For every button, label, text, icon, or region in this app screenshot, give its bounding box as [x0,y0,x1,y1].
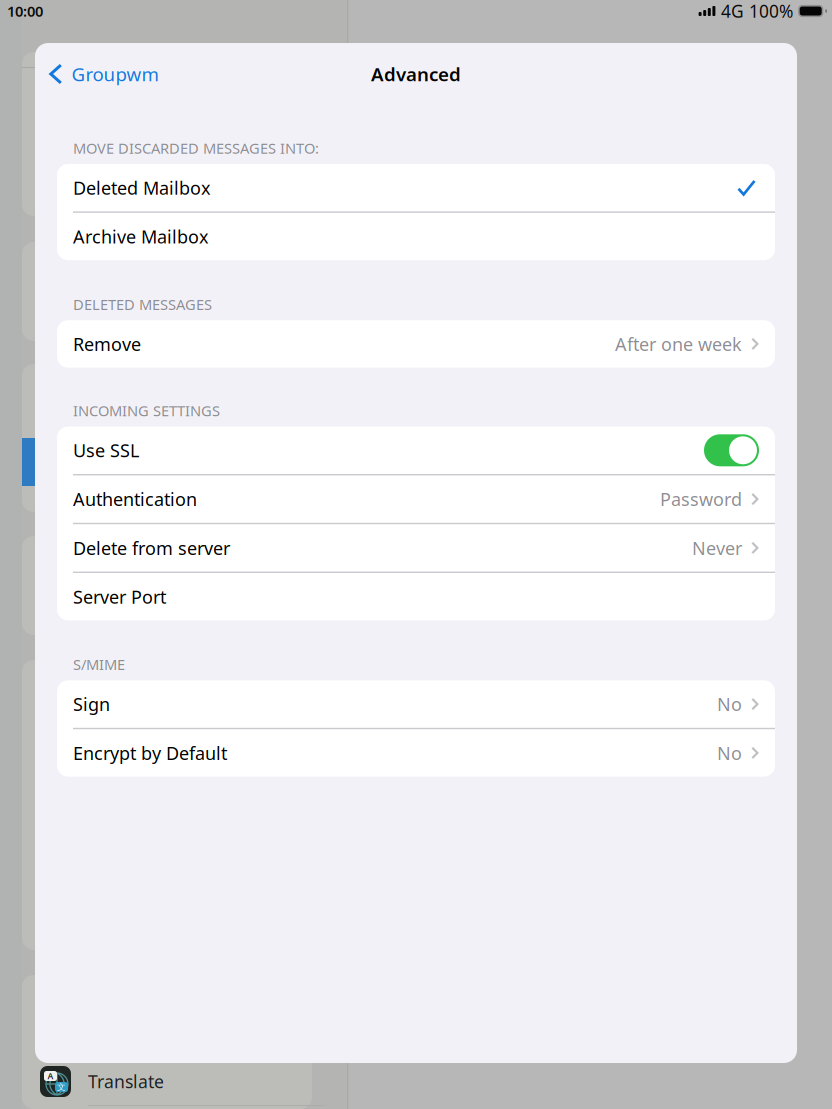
button[interactable]: Use SSL [57,427,775,474]
button[interactable]: Deleted Mailbox [57,164,775,211]
button[interactable]: Archive Mailbox [57,213,775,260]
staticText: Translate [88,1070,164,1093]
staticText: 10:00 [7,1,43,21]
button[interactable]: Authentication [57,475,775,523]
button[interactable]: Encrypt by Default [57,729,775,777]
staticText: DELETED MESSAGES [73,294,212,314]
staticText: Groupwm [71,62,158,86]
staticText: S/MIME [73,655,125,674]
staticText: Never [692,536,742,560]
staticText: No [717,741,742,765]
button[interactable]: Delete from server [57,524,775,572]
staticText: Archive Mailbox [73,224,209,248]
staticText: Password [660,487,742,511]
staticText: Server Port [73,585,166,609]
button[interactable]: Server Port [57,573,775,620]
staticText: Delete from server [73,536,230,560]
staticText: 文 [57,1082,66,1092]
staticText: 4G 100% [721,0,793,22]
staticText: Use SSL [73,438,139,462]
staticText: Deleted Mailbox [73,176,211,200]
staticText: Advanced [371,62,461,86]
staticText: MOVE DISCARDED MESSAGES INTO: [73,138,319,158]
staticText: Authentication [73,487,197,511]
staticText: Remove [73,332,141,356]
button[interactable]: Sign [57,680,775,728]
staticText: Encrypt by Default [73,741,227,765]
staticText: A [47,1070,53,1082]
button[interactable]: Groupwm [35,52,170,96]
staticText: After one week [615,332,742,356]
staticText: No [717,692,742,716]
staticText: Sign [73,692,110,716]
staticText: INCOMING SETTINGS [73,401,220,420]
button[interactable]: Remove [57,320,775,368]
